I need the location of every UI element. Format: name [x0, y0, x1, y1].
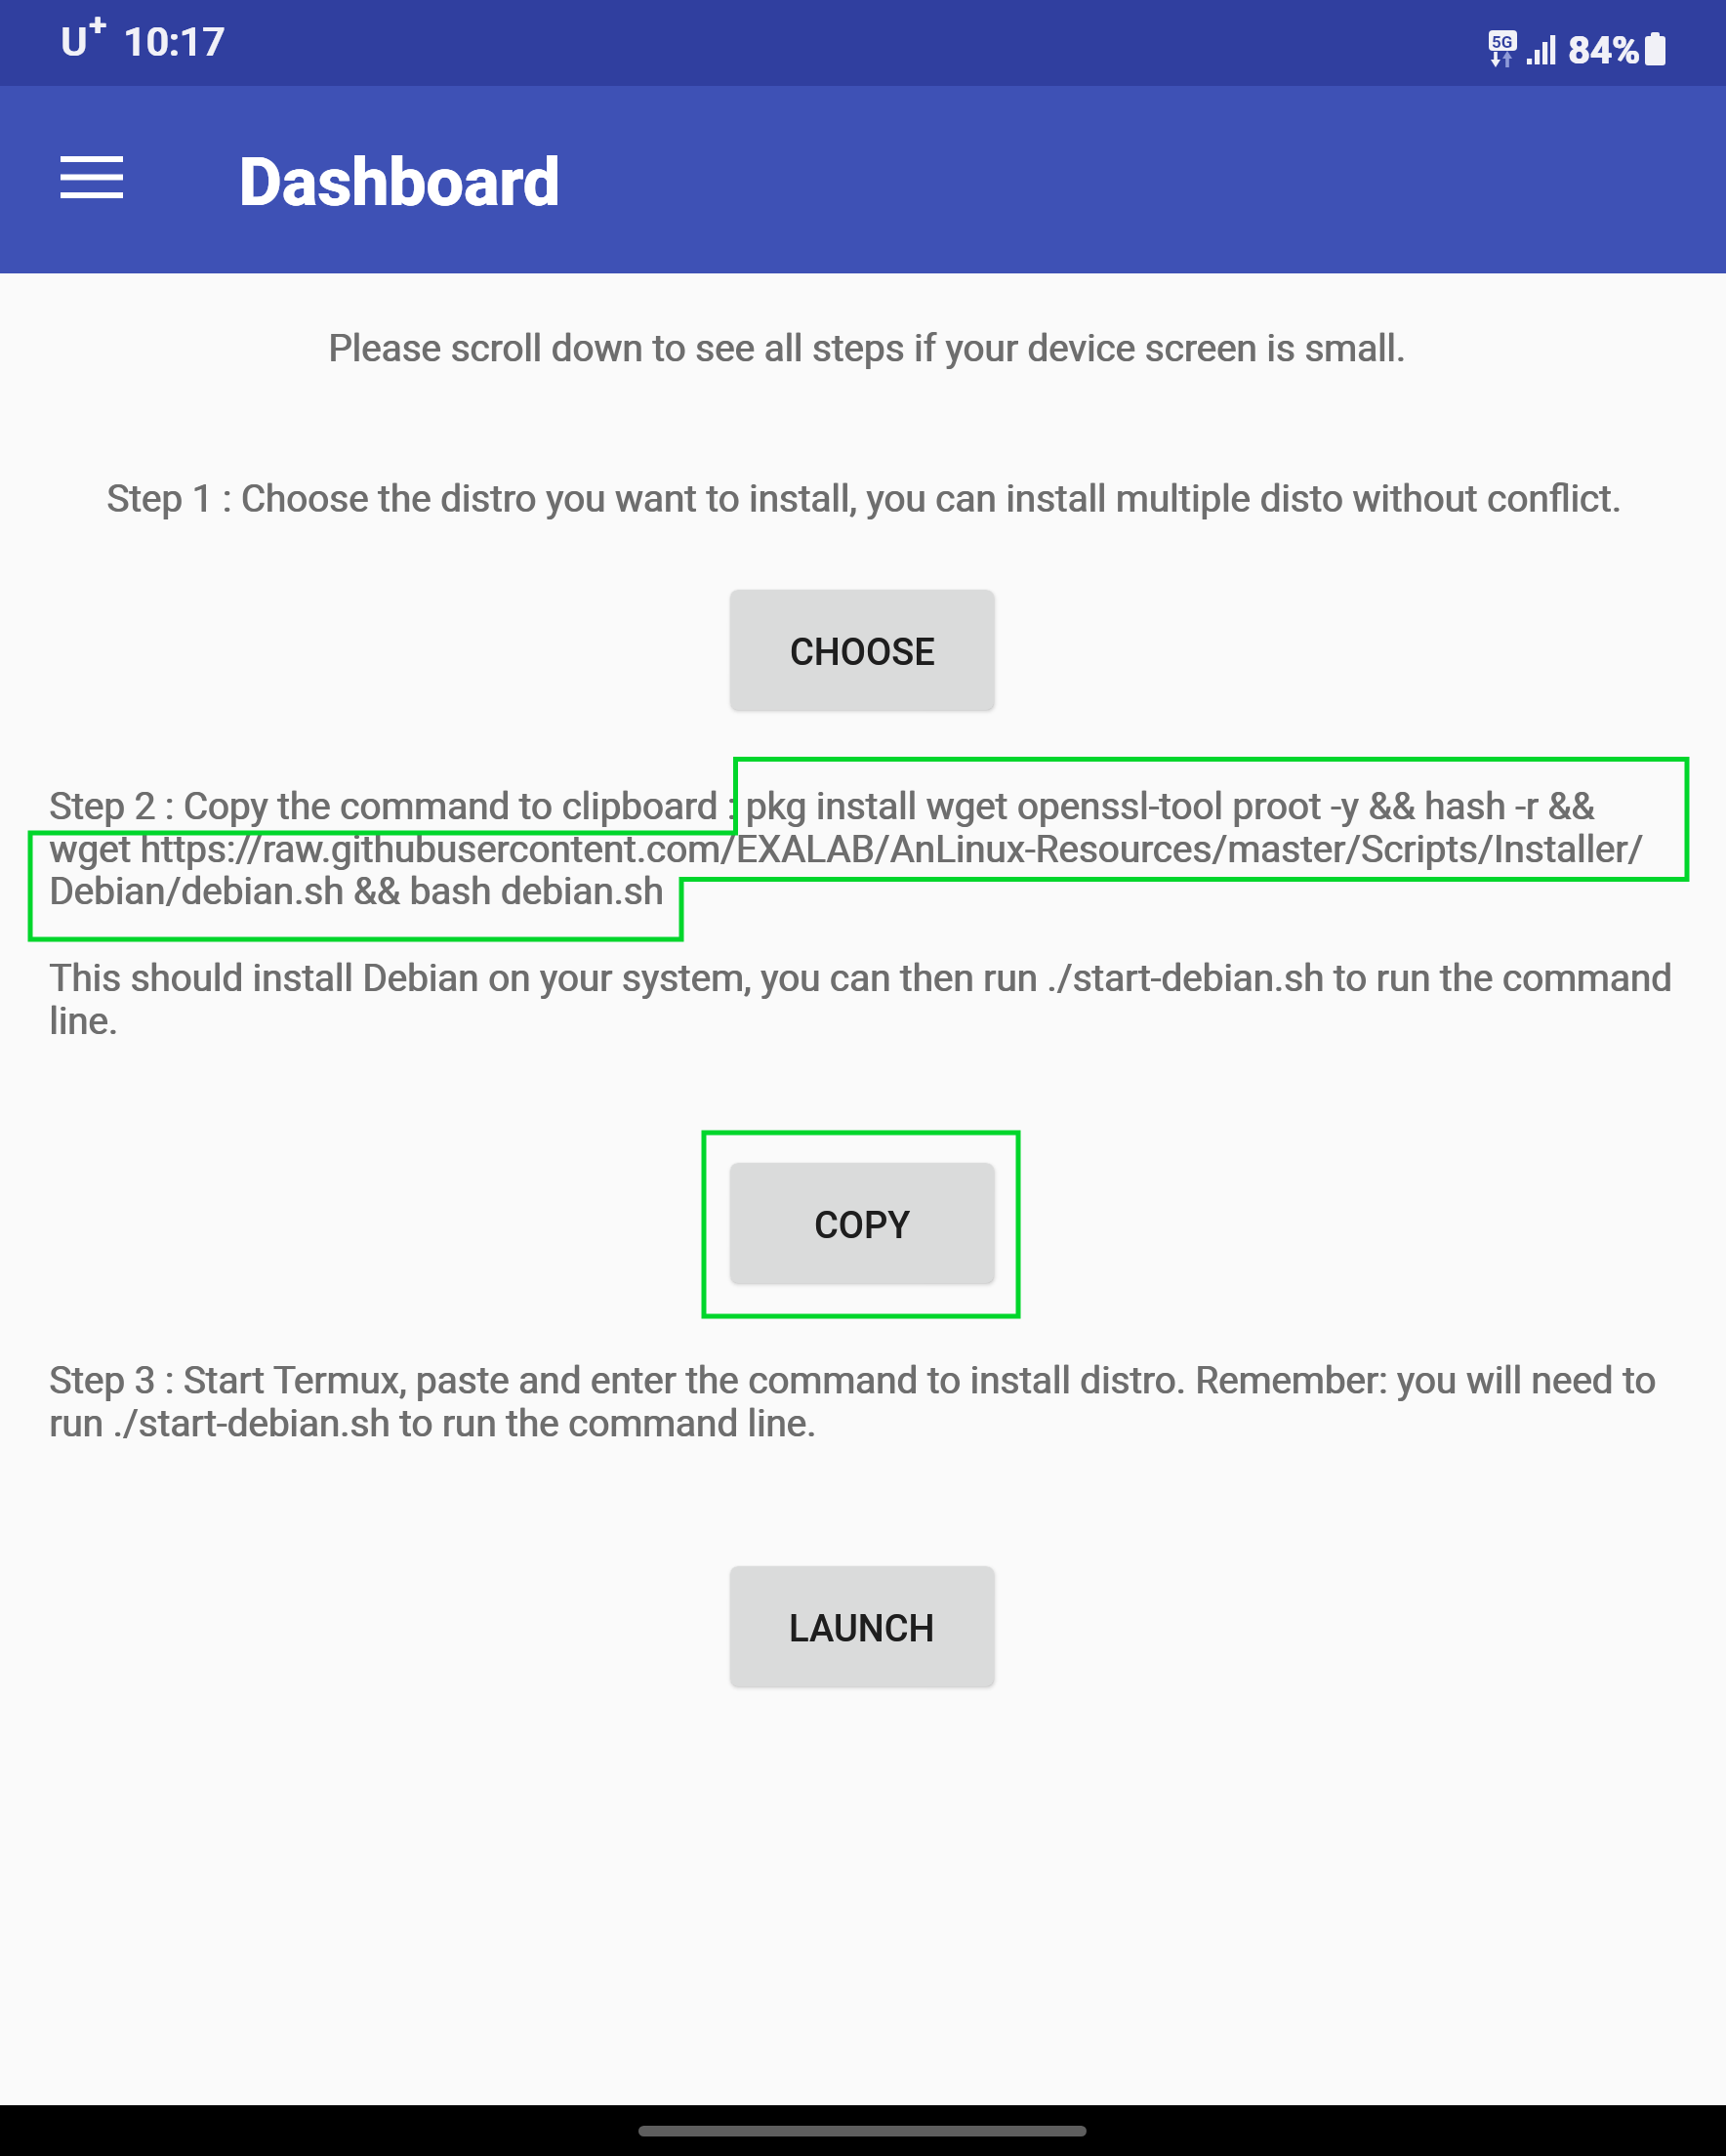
staticText: Debian/debian.sh && bash debian.sh — [50, 869, 665, 913]
button[interactable]: Open navigation drawer — [38, 147, 145, 206]
staticText: + — [89, 6, 106, 43]
staticText: This should install Debian on your syste… — [50, 956, 1673, 1000]
staticText: 84% — [1569, 28, 1641, 73]
staticText: Dashboard — [239, 144, 561, 222]
staticText: Step 3 : Start Termux, paste and enter t… — [49, 1358, 1656, 1402]
button[interactable]: Copy command — [730, 1163, 994, 1283]
staticText: run ./start-debian.sh to run the command… — [50, 1401, 817, 1445]
staticText: Step 2 : Copy the command to clipboard :… — [49, 784, 1595, 828]
staticText: U — [62, 19, 88, 65]
staticText: LAUNCH — [789, 1607, 935, 1651]
staticText: run ./start-debian.sh to run the command… — [49, 1401, 816, 1445]
staticText: 5G — [1492, 32, 1513, 52]
staticText: Please scroll down to see all steps if y… — [328, 326, 1406, 370]
other: Mobile signal — [1527, 35, 1555, 64]
button[interactable]: Install command, tap to select — [30, 759, 1687, 939]
staticText: 10:17 — [124, 19, 226, 65]
button[interactable]: Choose distro — [730, 590, 994, 710]
staticText: LAUNCH — [789, 1607, 935, 1651]
staticText: Step 1 : Choose the distro you want to i… — [107, 477, 1623, 520]
staticText: wget https://raw.githubusercontent.com/E… — [50, 827, 1645, 871]
staticText: Step 3 : Start Termux, paste and enter t… — [50, 1358, 1657, 1402]
staticText: Dashboard — [238, 144, 560, 222]
staticText: line. — [49, 999, 118, 1043]
staticText: + — [90, 6, 107, 43]
staticText: line. — [50, 999, 119, 1043]
staticText: COPY — [814, 1204, 911, 1248]
staticText: 10:17 — [123, 19, 226, 65]
other: Battery 84 percent — [1645, 32, 1665, 65]
button[interactable]: Launch distro — [730, 1566, 994, 1686]
staticText: CHOOSE — [790, 631, 935, 675]
staticText: 84% — [1568, 28, 1640, 73]
staticText: This should install Debian on your syste… — [49, 956, 1672, 1000]
staticText: U — [61, 19, 87, 65]
staticText: COPY — [814, 1204, 911, 1248]
staticText: Please scroll down to see all steps if y… — [329, 326, 1407, 370]
staticText: wget https://raw.githubusercontent.com/E… — [49, 827, 1644, 871]
other: 5G data — [1489, 30, 1518, 67]
staticText: Step 1 : Choose the distro you want to i… — [106, 477, 1622, 520]
staticText: Debian/debian.sh && bash debian.sh — [49, 869, 664, 913]
staticText: Step 2 : Copy the command to clipboard :… — [50, 784, 1596, 828]
staticText: CHOOSE — [790, 631, 935, 675]
